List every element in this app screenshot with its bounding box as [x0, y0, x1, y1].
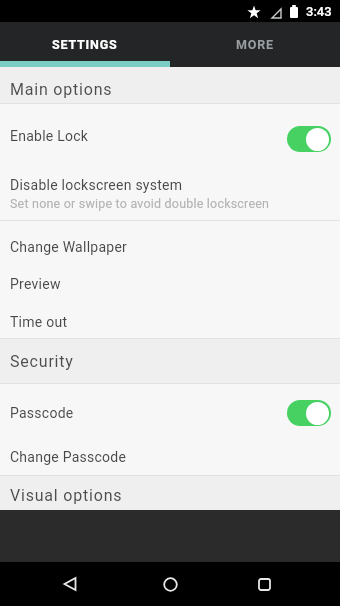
staticText: Disable lockscreen system	[10, 177, 183, 193]
button[interactable]: Passcode	[0, 387, 340, 438]
button[interactable]: Change Passcode	[0, 438, 340, 475]
staticText: Change Wallpaper	[10, 239, 128, 255]
staticText: MORE	[236, 37, 274, 52]
button[interactable]	[250, 570, 278, 598]
staticText: Visual options	[10, 486, 123, 505]
staticText: Enable Lock	[10, 128, 89, 144]
staticText: Set none or swipe to avoid double locksc…	[10, 196, 270, 211]
button[interactable]: MORE	[170, 22, 340, 61]
button[interactable]: SETTINGS	[0, 22, 170, 61]
button[interactable]	[156, 570, 184, 598]
button[interactable]: Change Wallpaper	[0, 221, 340, 264]
staticText: Preview	[10, 276, 61, 292]
button[interactable]: Preview	[0, 264, 340, 302]
staticText: Passcode	[10, 405, 74, 421]
staticText: Change Passcode	[10, 449, 127, 465]
staticText: Time out	[10, 314, 68, 330]
staticText: Main options	[10, 80, 113, 99]
staticText: Security	[10, 352, 74, 371]
button[interactable]: Enable Lock	[0, 112, 340, 160]
staticText: 3:43	[306, 4, 332, 19]
staticText: SETTINGS	[52, 37, 118, 52]
button[interactable]	[56, 570, 84, 598]
button[interactable]: Disable lockscreen system	[0, 167, 340, 220]
button[interactable]: Time out	[0, 302, 340, 338]
